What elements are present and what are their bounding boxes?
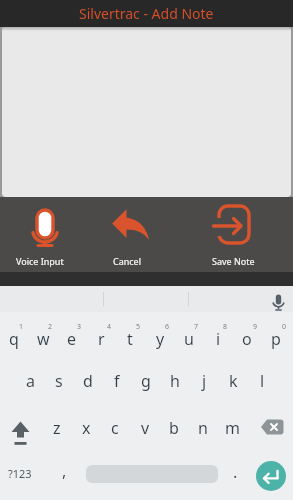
staticText: c <box>111 417 119 439</box>
button[interactable]: Voice Input <box>0 197 88 272</box>
button[interactable]: p <box>262 319 290 359</box>
staticText: q <box>9 328 19 350</box>
staticText: j <box>202 370 207 392</box>
staticText: , <box>62 460 67 482</box>
staticText: g <box>141 370 151 392</box>
button[interactable]: b <box>160 408 188 448</box>
staticText: 3 <box>74 322 84 332</box>
staticText: 2 <box>45 322 55 332</box>
button[interactable]: f <box>103 361 131 401</box>
button[interactable]: Save Note <box>185 197 281 272</box>
staticText: Voice Input <box>16 255 64 267</box>
button[interactable]: n <box>189 408 217 448</box>
staticText: b <box>169 417 179 439</box>
staticText: y <box>156 328 165 350</box>
button[interactable]: v <box>131 408 159 448</box>
staticText: e <box>67 328 77 350</box>
button[interactable]: , <box>50 451 78 491</box>
staticText: l <box>260 370 265 392</box>
button[interactable]: j <box>190 361 218 401</box>
button[interactable]: q <box>0 319 28 359</box>
staticText: 0 <box>279 322 289 332</box>
staticText: i <box>216 328 221 350</box>
staticText: x <box>82 417 91 439</box>
staticText: k <box>229 370 238 392</box>
button[interactable] <box>257 416 287 438</box>
button[interactable]: ?123 <box>2 458 38 488</box>
button[interactable]: w <box>29 319 57 359</box>
button[interactable]: a <box>16 361 44 401</box>
button[interactable]: m <box>218 408 246 448</box>
staticText: 5 <box>133 322 143 332</box>
button[interactable]: k <box>219 361 247 401</box>
staticText: m <box>225 417 240 439</box>
staticText: 8 <box>220 322 230 332</box>
button[interactable]: . <box>221 452 249 492</box>
button[interactable] <box>2 27 291 197</box>
button[interactable]: x <box>72 408 100 448</box>
button[interactable] <box>6 421 34 449</box>
button[interactable] <box>256 461 286 491</box>
staticText: 6 <box>162 322 172 332</box>
button[interactable]: e <box>58 319 86 359</box>
button[interactable]: g <box>132 361 160 401</box>
button[interactable]: d <box>74 361 102 401</box>
staticText: d <box>83 370 93 392</box>
staticText: f <box>114 370 120 392</box>
staticText: s <box>55 370 63 392</box>
staticText: p <box>271 328 281 350</box>
staticText: 4 <box>104 322 114 332</box>
staticText: w <box>37 328 50 350</box>
staticText: 9 <box>250 322 260 332</box>
staticText: n <box>198 417 208 439</box>
button[interactable]: z <box>43 408 71 448</box>
staticText: 7 <box>191 322 201 332</box>
button[interactable]: s <box>45 361 73 401</box>
staticText: 1 <box>16 322 26 332</box>
button[interactable]: c <box>101 408 129 448</box>
button[interactable]: r <box>87 319 115 359</box>
button[interactable]: Cancel <box>79 197 175 272</box>
staticText: v <box>141 417 150 439</box>
staticText: a <box>26 370 35 392</box>
button[interactable]: l <box>248 361 276 401</box>
staticText: Save Note <box>212 255 255 267</box>
button[interactable]: h <box>161 361 189 401</box>
button[interactable]: y <box>146 319 174 359</box>
staticText: u <box>184 328 194 350</box>
button[interactable]: o <box>233 319 261 359</box>
staticText: Cancel <box>113 255 142 267</box>
staticText: h <box>170 370 180 392</box>
staticText: r <box>98 328 105 350</box>
staticText: o <box>242 328 252 350</box>
staticText: t <box>127 328 133 350</box>
staticText: . <box>233 461 238 483</box>
button[interactable]: i <box>204 319 232 359</box>
button[interactable]: u <box>175 319 203 359</box>
staticText: z <box>53 417 61 439</box>
staticText: ?123 <box>8 466 32 481</box>
button[interactable]: t <box>116 319 144 359</box>
staticText: Silvertrac - Add Note <box>79 4 214 23</box>
